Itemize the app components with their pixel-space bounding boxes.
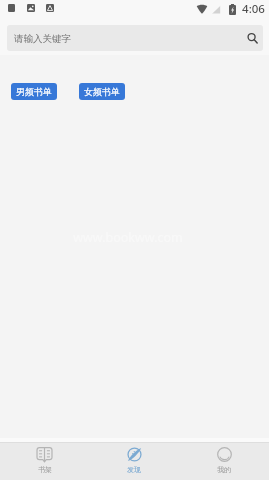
staticText: 女频书单 [84,86,120,97]
staticText: 请输入关键字 [14,33,71,45]
staticText: 书架 [38,465,52,474]
button[interactable]: 女频书单 [79,83,125,100]
staticText: 4:06 [242,1,265,17]
staticText: 我的 [217,465,231,474]
button[interactable]: 我的 [179,443,269,480]
button[interactable]: 男频书单 [11,83,57,100]
button[interactable]: Search [246,32,259,45]
button[interactable]: 书架 [0,443,89,480]
staticText: 男频书单 [16,86,52,97]
button[interactable]: 发现 [89,443,179,480]
staticText: 发现 [127,465,141,474]
button[interactable]: 请输入关键字 [7,25,263,51]
